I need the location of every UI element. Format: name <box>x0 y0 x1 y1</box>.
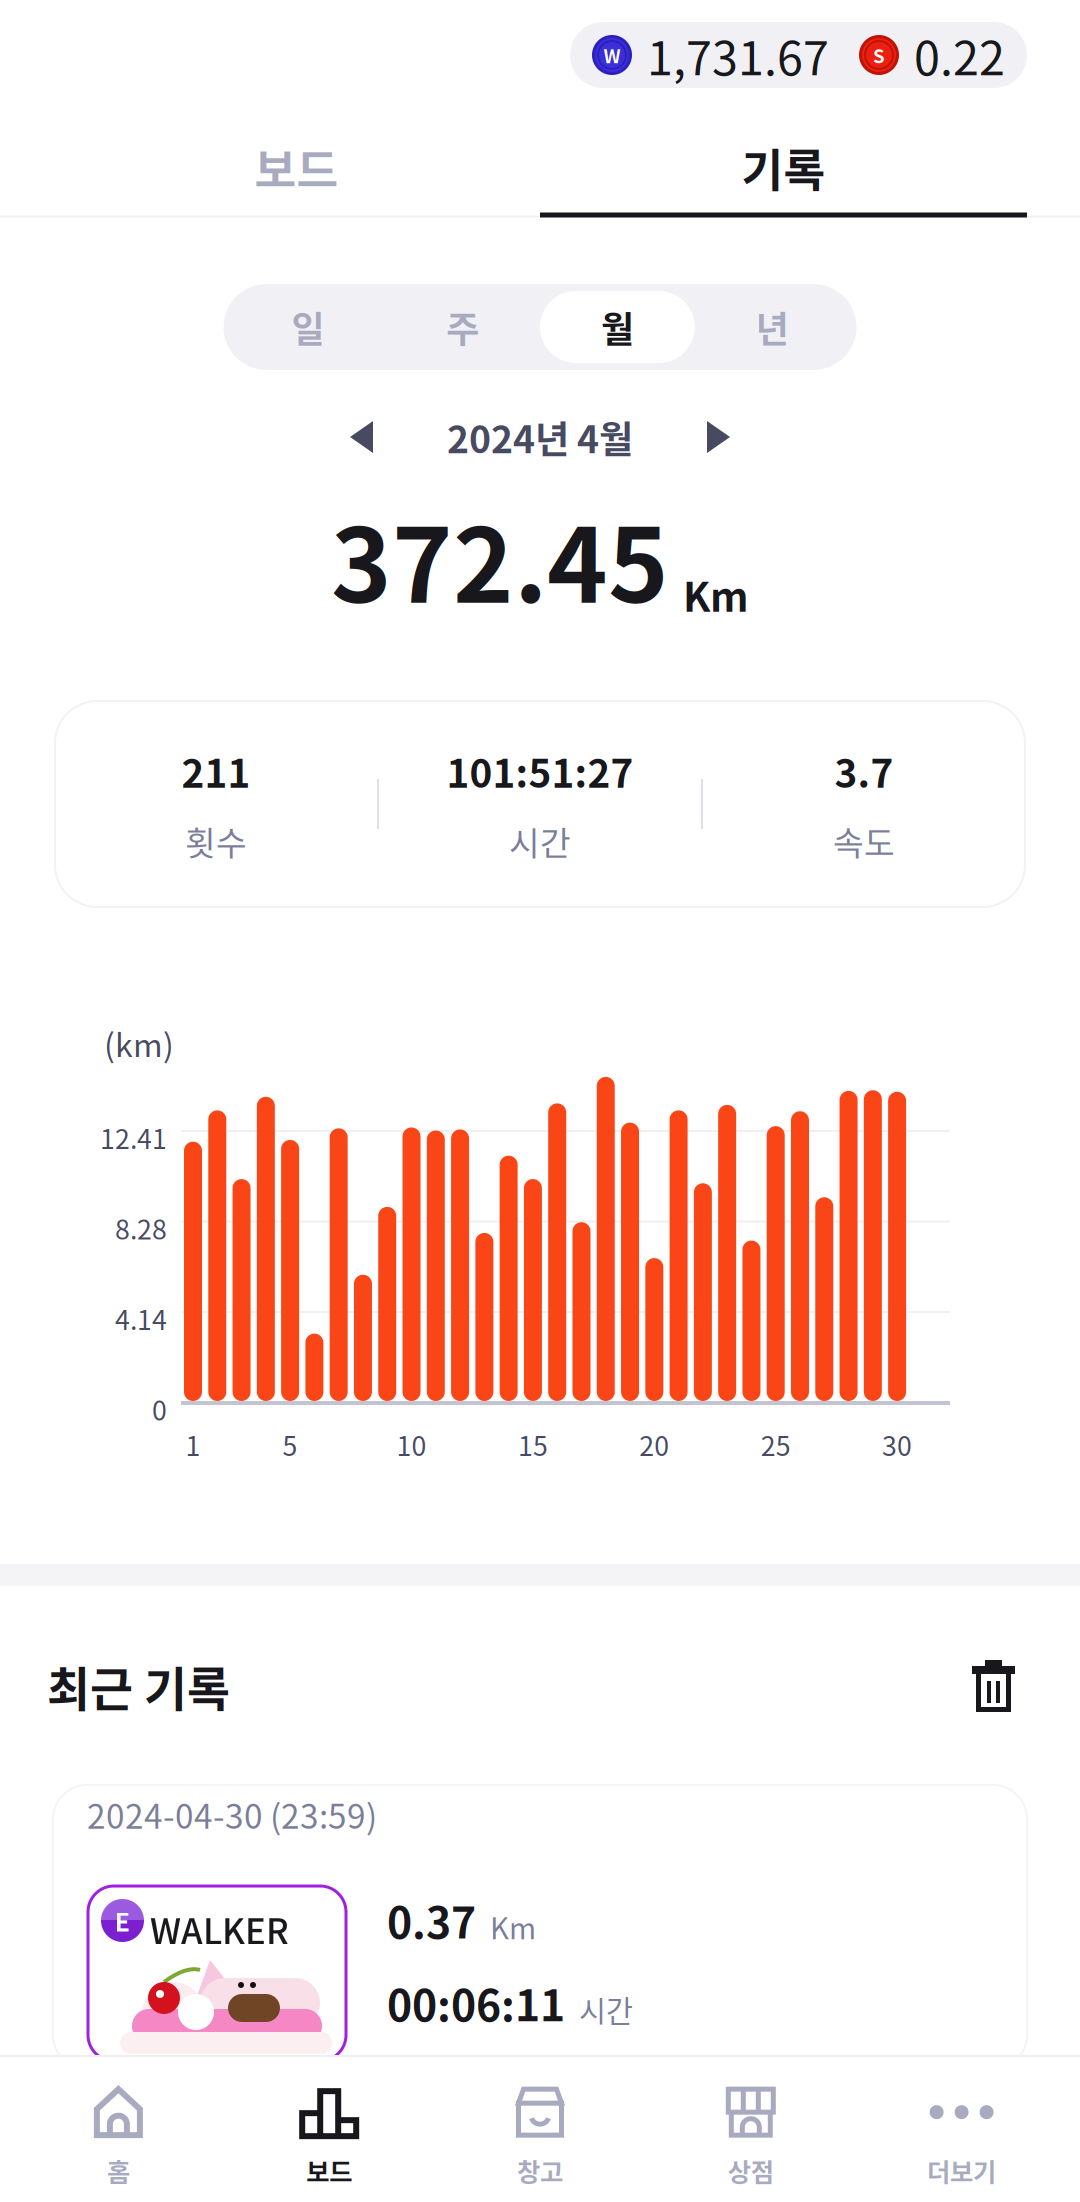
staticText: 3.7 <box>834 743 893 799</box>
button[interactable]: 더보기 <box>856 2057 1067 2202</box>
staticText: 횟수 <box>185 817 247 865</box>
staticText: 기록 <box>741 135 825 200</box>
staticText: 최근 기록 <box>47 1652 230 1720</box>
staticText: 5 <box>283 1425 298 1464</box>
staticText: 더보기 <box>927 2152 996 2189</box>
staticText: 주 <box>446 301 479 353</box>
button[interactable]: 2024-04-30 (23:59) <box>0 1785 1080 2069</box>
staticText: Km <box>490 1905 536 1948</box>
staticText: 30 <box>882 1425 912 1464</box>
staticText: 시간 <box>509 817 571 865</box>
button[interactable]: 년 <box>695 291 850 363</box>
staticText: 1 <box>185 1425 200 1464</box>
staticText: 101:51:27 <box>446 743 633 799</box>
staticText: 372.45 <box>331 484 669 632</box>
staticText: (km) <box>104 1020 174 1066</box>
staticText: 2024년 4월 <box>447 410 633 464</box>
button[interactable]: 일 <box>230 291 385 363</box>
staticText: 00:06:11 <box>387 1972 565 2034</box>
button[interactable]: 기록 <box>540 122 1027 212</box>
staticText: 속도 <box>833 817 895 865</box>
button[interactable]: Next month <box>699 413 738 461</box>
button[interactable]: Previous month <box>342 413 381 461</box>
staticText: 8.28 <box>115 1208 167 1247</box>
staticText: 창고 <box>517 2152 563 2189</box>
staticText: WALKER <box>150 1904 289 1954</box>
staticText: 시간 <box>579 1988 633 2031</box>
staticText: W <box>603 41 620 68</box>
button[interactable]: W <box>570 22 1027 88</box>
button[interactable]: Delete all records <box>960 1650 1027 1722</box>
button[interactable]: 상점 <box>645 2057 856 2202</box>
staticText: 10 <box>396 1425 426 1464</box>
staticText: 년 <box>756 301 789 353</box>
staticText: 1,731.67 <box>647 21 829 89</box>
staticText: 0.37 <box>387 1889 476 1951</box>
button[interactable]: 주 <box>385 291 540 363</box>
staticText: 보드 <box>254 135 338 200</box>
staticText: S <box>873 41 885 68</box>
staticText: 25 <box>761 1425 791 1464</box>
staticText: 15 <box>518 1425 548 1464</box>
staticText: 0.22 <box>914 21 1005 89</box>
button[interactable]: 보드 <box>224 2057 435 2202</box>
staticText: 4.14 <box>115 1299 167 1338</box>
button[interactable]: 홈 <box>13 2057 224 2202</box>
staticText: Km <box>683 565 749 623</box>
staticText: 12.41 <box>100 1118 167 1157</box>
button[interactable]: 보드 <box>53 122 540 212</box>
button[interactable]: 월 <box>540 291 695 363</box>
staticText: 홈 <box>107 2152 130 2189</box>
staticText: 보드 <box>306 2152 352 2189</box>
staticText: 상점 <box>728 2152 774 2189</box>
staticText: 2024-04-30 (23:59) <box>87 1790 377 1838</box>
staticText: 일 <box>291 301 324 353</box>
button[interactable]: 창고 <box>435 2057 645 2202</box>
staticText: 0 <box>152 1389 167 1428</box>
staticText: 월 <box>601 301 634 353</box>
staticText: E <box>114 1902 130 1939</box>
staticText: 20 <box>639 1425 669 1464</box>
staticText: 211 <box>181 743 250 799</box>
